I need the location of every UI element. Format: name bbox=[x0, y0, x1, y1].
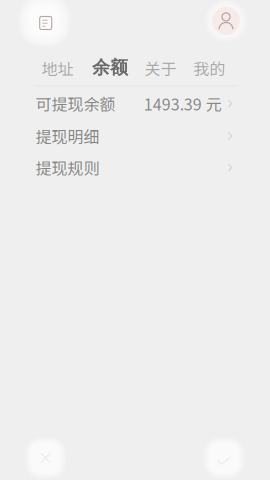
button[interactable]: Scan bbox=[29, 5, 60, 36]
staticText: 我的 bbox=[193, 56, 225, 80]
staticText: 地址 bbox=[41, 56, 73, 80]
staticText: 1493.39 元 bbox=[144, 92, 222, 115]
button[interactable]: 提现明细 bbox=[35, 121, 232, 151]
button[interactable]: 提现规则 bbox=[35, 152, 232, 182]
button[interactable]: 可提现余额 bbox=[35, 88, 232, 118]
staticText: 关于 bbox=[144, 56, 176, 80]
button[interactable]: Profile bbox=[212, 7, 240, 35]
button[interactable]: 余额 bbox=[86, 51, 134, 84]
button[interactable]: 我的 bbox=[187, 51, 231, 85]
button[interactable]: 地址 bbox=[35, 51, 79, 85]
staticText: 可提现余额 bbox=[35, 92, 115, 115]
staticText: 提现明细 bbox=[35, 124, 99, 148]
staticText: 余额 bbox=[92, 56, 128, 79]
button[interactable]: 关于 bbox=[138, 51, 182, 85]
staticText: 提现规则 bbox=[35, 156, 99, 179]
